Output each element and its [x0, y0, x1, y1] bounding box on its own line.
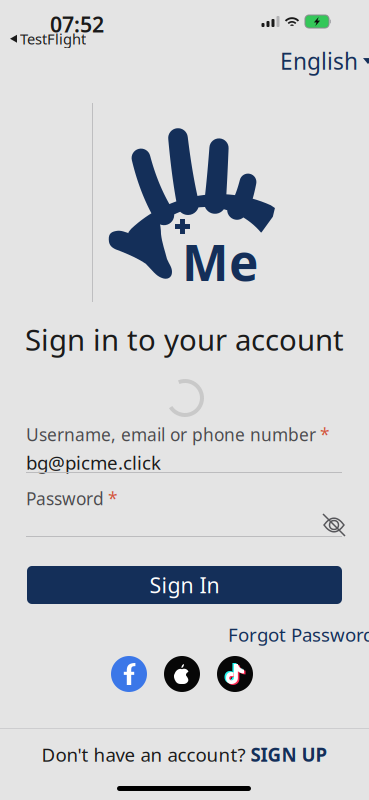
staticText: bg@picme.click	[26, 450, 161, 475]
staticText: *	[108, 487, 118, 510]
staticText: Sign In	[149, 571, 219, 599]
staticText: SIGN UP	[250, 742, 327, 767]
staticText: TestFlight	[20, 29, 86, 48]
button[interactable]: Sign In	[27, 566, 342, 604]
button[interactable]: Show password	[318, 511, 350, 539]
button[interactable]: Forgot Password?	[224, 619, 369, 650]
button[interactable]: Sign in with Facebook	[111, 656, 147, 692]
button[interactable]: Sign in with TikTok	[217, 656, 253, 692]
staticText: *	[320, 423, 330, 446]
button[interactable]: SIGN UP	[250, 742, 327, 767]
staticText: Don't have an account?	[41, 742, 245, 767]
staticText: 07:52	[50, 10, 104, 38]
staticText: Sign in to your account	[25, 320, 344, 359]
staticText: Forgot Password?	[228, 622, 369, 647]
staticText: Password	[26, 487, 104, 510]
staticText: English	[280, 46, 358, 76]
button[interactable]: Sign in with Apple	[164, 656, 200, 692]
staticText: Me	[182, 229, 258, 294]
button[interactable]: English	[274, 42, 369, 80]
staticText: Username, email or phone number	[26, 423, 316, 446]
